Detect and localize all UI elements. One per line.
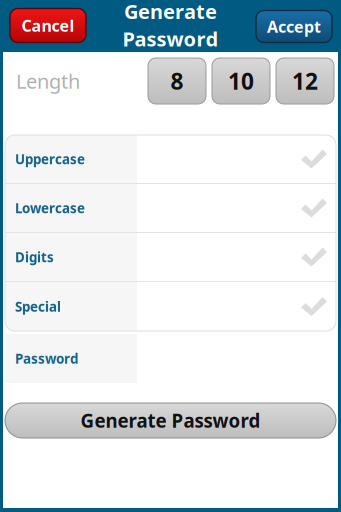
staticText: Cancel [21,15,74,36]
button[interactable]: 12 [276,58,334,104]
button[interactable]: Special [5,282,336,331]
staticText: Special [15,298,61,315]
staticText: Password [15,350,78,367]
staticText: Password [122,25,218,52]
button[interactable]: Uppercase [5,135,336,184]
button[interactable]: Generate Password [5,403,336,438]
button[interactable]: Digits [5,233,336,282]
button[interactable]: 8 [148,58,206,104]
button[interactable]: 10 [212,58,270,104]
staticText: 10 [228,66,254,96]
staticText: Generate [124,0,217,24]
staticText: Generate Password [80,408,260,433]
button[interactable]: Cancel [10,8,86,42]
staticText: Length [16,68,80,94]
staticText: Digits [15,248,54,266]
staticText: Lowercase [15,199,85,217]
button[interactable]: Password [5,334,336,383]
button[interactable]: Accept [256,10,332,42]
staticText: 8 [170,66,183,96]
staticText: Accept [267,16,321,37]
staticText: 12 [292,66,318,96]
button[interactable]: Lowercase [5,184,336,233]
staticText: Uppercase [15,150,85,168]
